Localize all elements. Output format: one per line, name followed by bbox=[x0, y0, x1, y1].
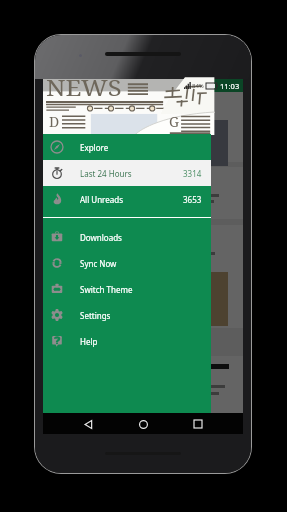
staticText: Explore bbox=[80, 142, 109, 153]
staticText: D bbox=[49, 112, 60, 131]
button[interactable]: All Unreads bbox=[43, 186, 211, 212]
staticText: All Unreads bbox=[80, 194, 124, 205]
staticText: Last 24 Hours bbox=[80, 168, 132, 179]
staticText: Sync Now bbox=[80, 258, 117, 269]
button[interactable]: Back bbox=[78, 414, 98, 434]
staticText: Downloads bbox=[80, 232, 122, 243]
button[interactable]: Switch Theme bbox=[43, 276, 211, 302]
button[interactable]: Recents bbox=[188, 414, 208, 434]
button[interactable]: Last 24 Hours bbox=[43, 160, 211, 186]
staticText: 84% bbox=[192, 82, 204, 90]
staticText: Settings bbox=[80, 310, 111, 321]
staticText: G bbox=[169, 112, 179, 131]
button[interactable]: Explore bbox=[43, 134, 211, 160]
button[interactable]: Sync Now bbox=[43, 250, 211, 276]
button[interactable]: Settings bbox=[43, 302, 211, 328]
staticText: 11:03 bbox=[220, 81, 240, 91]
button[interactable]: Downloads bbox=[43, 224, 211, 250]
button[interactable]: Help bbox=[43, 328, 211, 354]
staticText: 3653 bbox=[183, 194, 202, 205]
staticText: 3314 bbox=[183, 168, 202, 179]
staticText: Switch Theme bbox=[80, 284, 133, 295]
button[interactable]: Home bbox=[133, 414, 153, 434]
staticText: Help bbox=[80, 336, 98, 347]
staticText: NEWS bbox=[46, 73, 123, 104]
